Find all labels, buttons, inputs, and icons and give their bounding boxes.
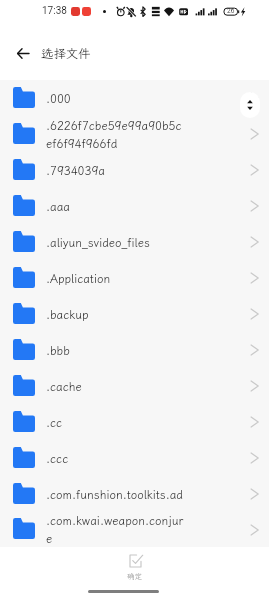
button[interactable]: .aaa <box>0 188 269 224</box>
staticText: 17:38 <box>42 5 67 17</box>
button[interactable]: .com.kwai.weapon.conjure <box>0 512 269 547</box>
staticText: .aaa <box>46 199 70 214</box>
button[interactable]: .backup <box>0 296 269 332</box>
button[interactable]: Back <box>5 35 41 71</box>
button[interactable]: .cc <box>0 404 269 440</box>
staticText: .6226f7cbe59e99a90b5cef6f94f966fd <box>46 118 186 151</box>
staticText: .000 <box>46 91 71 106</box>
button[interactable]: Fast scroll <box>240 92 260 118</box>
staticText: .Application <box>46 271 111 286</box>
staticText: .ccc <box>46 451 69 466</box>
button[interactable]: .6226f7cbe59e99a90b5cef6f94f966fd <box>0 116 269 152</box>
staticText: .bbb <box>46 343 70 358</box>
button[interactable]: .com.funshion.toolkits.ad <box>0 476 269 512</box>
button[interactable]: .ccc <box>0 440 269 476</box>
staticText: 选择文件 <box>41 45 91 61</box>
button[interactable]: .000 <box>0 80 269 116</box>
staticText: 26 <box>227 7 235 15</box>
button[interactable]: 确定 <box>100 547 170 582</box>
staticText: .backup <box>46 307 89 322</box>
button[interactable]: .bbb <box>0 332 269 368</box>
staticText: 确定 <box>127 571 143 581</box>
button[interactable]: .aliyun_svideo_files <box>0 224 269 260</box>
button[interactable]: .cache <box>0 368 269 404</box>
staticText: .com.funshion.toolkits.ad <box>46 487 183 502</box>
staticText: .cache <box>46 379 82 394</box>
button[interactable]: .7934039a <box>0 152 269 188</box>
staticText: .com.kwai.weapon.conjure <box>46 513 186 546</box>
staticText: .7934039a <box>46 163 105 178</box>
staticText: .cc <box>46 415 63 430</box>
button[interactable]: .Application <box>0 260 269 296</box>
staticText: .aliyun_svideo_files <box>46 235 150 250</box>
